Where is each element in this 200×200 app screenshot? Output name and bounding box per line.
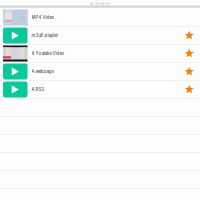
staticText: m3u8 playlist <box>31 33 57 38</box>
staticText: A Youtube Video <box>31 51 64 56</box>
button[interactable]: A RSS <box>0 81 200 99</box>
button[interactable]: Search <box>0 0 200 8</box>
button[interactable]: m3u8 playlist <box>0 27 200 45</box>
button[interactable]: A Youtube Video <box>0 45 200 63</box>
staticText: A RSS <box>31 87 44 92</box>
staticText: MP4 Video <box>31 15 54 20</box>
staticText: Search <box>95 1 110 7</box>
staticText: A webpage <box>31 69 53 74</box>
button[interactable]: A webpage <box>0 63 200 81</box>
button[interactable]: MP4 Video <box>0 9 200 27</box>
